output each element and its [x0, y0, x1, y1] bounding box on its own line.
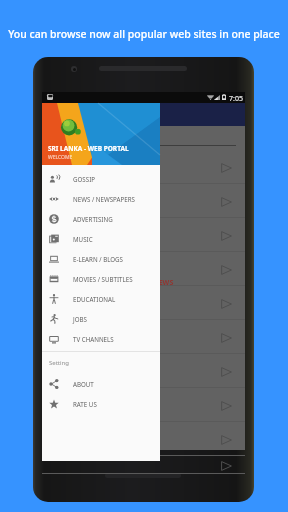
button[interactable]: MOVIES / SUBTITLES — [42, 269, 160, 289]
staticText: ADVERTISING — [73, 215, 113, 223]
staticText: RATE US — [73, 400, 97, 408]
staticText: GOSSIP — [73, 175, 95, 183]
button[interactable]: GOSSIP — [42, 169, 160, 189]
button[interactable]: E-LEARN / BLOGS — [42, 249, 160, 269]
staticText: ABOUT — [73, 380, 94, 388]
staticText: MUSIC — [73, 235, 93, 243]
staticText: E-LEARN / BLOGS — [73, 255, 124, 263]
staticText: Setting — [49, 359, 69, 367]
staticText: TV CHANNELS — [73, 335, 114, 343]
button[interactable]: JOBS — [42, 309, 160, 329]
staticText: 7:05 — [229, 94, 243, 104]
staticText: WELCOME — [48, 154, 73, 161]
button[interactable]: RATE US — [42, 394, 160, 414]
button[interactable]: EDUCATIONAL — [42, 289, 160, 309]
staticText: NEWS — [153, 278, 174, 288]
button[interactable]: ABOUT — [42, 374, 160, 394]
staticText: MOVIES / SUBTITLES — [73, 275, 133, 283]
staticText: EDUCATIONAL — [73, 295, 116, 303]
staticText: SRI LANKA - WEB PORTAL — [48, 144, 129, 153]
staticText: NEWS / NEWSPAPERS — [73, 195, 135, 203]
staticText: JOBS — [73, 315, 87, 323]
button[interactable]: TV CHANNELS — [42, 329, 160, 349]
button[interactable]: NEWS / NEWSPAPERS — [42, 189, 160, 209]
button[interactable]: MUSIC — [42, 229, 160, 249]
staticText: You can browse now all popular web sites… — [8, 27, 280, 41]
button[interactable]: ADVERTISING — [42, 209, 160, 229]
